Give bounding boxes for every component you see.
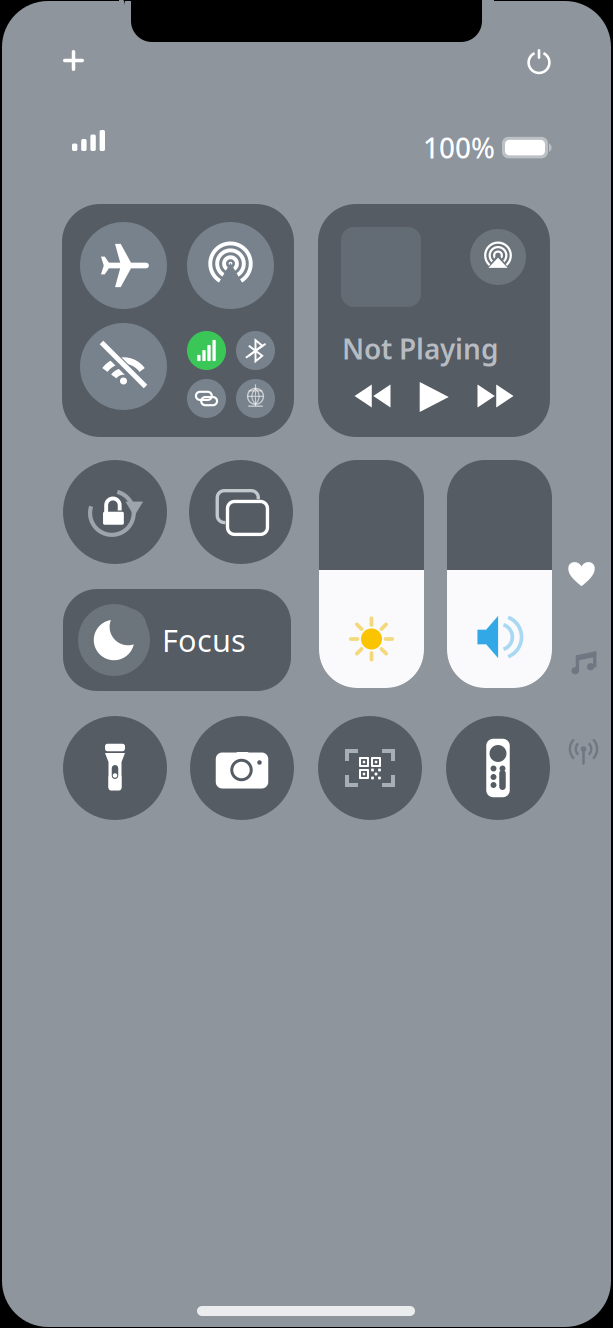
button[interactable]: Next Track — [477, 384, 513, 407]
button[interactable]: Bluetooth — [236, 331, 275, 370]
button[interactable]: Wi-Fi — [80, 323, 167, 410]
staticText: 100% — [423, 129, 495, 166]
staticText: Not Playing — [342, 330, 499, 367]
button[interactable]: Camera — [190, 716, 294, 820]
button[interactable]: Screen Mirroring — [189, 460, 293, 564]
button[interactable]: Brightness — [319, 460, 424, 688]
button[interactable]: Focus — [63, 589, 291, 691]
button[interactable]: Personal Hotspot — [187, 379, 226, 418]
button[interactable]: Code Scanner — [318, 716, 422, 820]
button[interactable]: AirPlay — [470, 229, 526, 285]
button[interactable]: Apple TV Remote — [446, 716, 550, 820]
button[interactable]: Power Off — [526, 48, 552, 74]
button[interactable]: Volume — [447, 460, 552, 688]
button[interactable]: Flashlight — [63, 716, 167, 820]
button[interactable]: Play — [420, 382, 449, 412]
button[interactable]: Previous Track — [354, 384, 390, 407]
button[interactable]: Add a Control — [63, 50, 84, 71]
button[interactable]: Cellular Data — [187, 331, 226, 370]
button[interactable]: VPN — [236, 379, 275, 418]
button[interactable]: AirDrop — [187, 222, 274, 309]
button[interactable]: Rotation Lock — [63, 460, 167, 564]
button[interactable]: Airplane Mode — [80, 222, 167, 309]
staticText: Focus — [162, 620, 246, 660]
